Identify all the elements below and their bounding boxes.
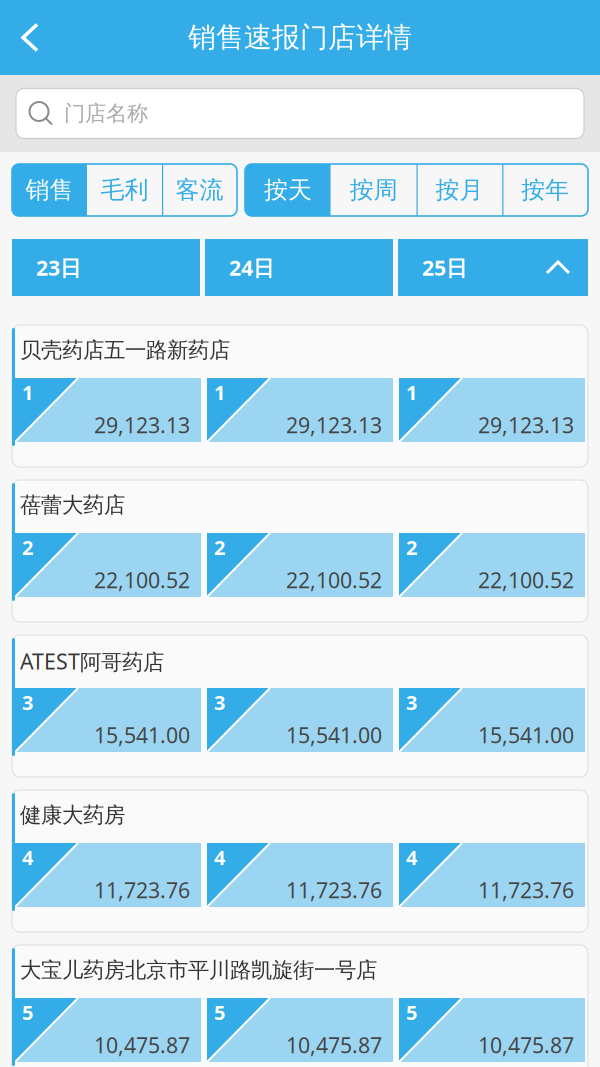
staticText: 1 <box>214 379 225 406</box>
button[interactable]: 按周 <box>331 164 417 216</box>
staticText: 5 <box>406 999 417 1026</box>
staticText: 按周 <box>350 175 398 205</box>
button[interactable]: 门店名称 <box>16 88 584 138</box>
staticText: 1 <box>22 379 33 406</box>
staticText: 4 <box>214 844 225 871</box>
staticText: 15,541.00 <box>478 721 574 749</box>
button[interactable]: 健康大药房 <box>12 790 588 932</box>
staticText: 22,100.52 <box>94 566 190 594</box>
staticText: 11,723.76 <box>478 876 574 904</box>
staticText: 贝壳药店五一路新药店 <box>20 337 230 363</box>
button[interactable]: 23日 <box>12 239 200 296</box>
staticText: 销售 <box>25 175 73 205</box>
staticText: 5 <box>22 999 33 1026</box>
button[interactable]: 贝壳药店五一路新药店 <box>12 325 588 467</box>
staticText: 29,123.13 <box>478 411 574 439</box>
staticText: 11,723.76 <box>286 876 382 904</box>
staticText: 4 <box>22 844 33 871</box>
staticText: 29,123.13 <box>94 411 190 439</box>
staticText: 23日 <box>36 253 81 282</box>
button[interactable]: 销售 <box>12 164 87 216</box>
staticText: 健康大药房 <box>20 802 125 828</box>
staticText: 29,123.13 <box>286 411 382 439</box>
staticText: 10,475.87 <box>478 1031 574 1059</box>
staticText: 按月 <box>435 175 483 205</box>
staticText: 3 <box>214 689 225 716</box>
button[interactable]: 按月 <box>416 164 502 216</box>
button[interactable]: 按天 <box>245 164 331 216</box>
staticText: 按天 <box>264 175 312 205</box>
staticText: 毛利 <box>100 175 148 205</box>
staticText: 大宝儿药房北京市平川路凯旋街一号店 <box>20 957 377 983</box>
button[interactable]: 客流 <box>162 164 237 216</box>
button[interactable]: 24日 <box>205 239 393 296</box>
staticText: 10,475.87 <box>94 1031 190 1059</box>
staticText: 3 <box>406 689 417 716</box>
staticText: 2 <box>22 534 33 561</box>
staticText: 按年 <box>521 175 569 205</box>
staticText: 2 <box>214 534 225 561</box>
staticText: 4 <box>406 844 417 871</box>
staticText: 销售速报门店详情 <box>188 20 412 55</box>
staticText: 3 <box>22 689 33 716</box>
staticText: 15,541.00 <box>286 721 382 749</box>
button[interactable]: 蓓蕾大药店 <box>12 480 588 622</box>
staticText: 25日 <box>422 253 467 282</box>
button[interactable]: 大宝儿药房北京市平川路凯旋街一号店 <box>12 945 588 1067</box>
staticText: 10,475.87 <box>286 1031 382 1059</box>
staticText: 门店名称 <box>64 100 148 127</box>
staticText: 蓓蕾大药店 <box>20 492 125 518</box>
staticText: 2 <box>406 534 417 561</box>
button[interactable]: 毛利 <box>87 164 162 216</box>
button[interactable]: ATEST阿哥药店 <box>12 635 588 777</box>
staticText: 24日 <box>229 253 274 282</box>
staticText: 5 <box>214 999 225 1026</box>
staticText: 22,100.52 <box>478 566 574 594</box>
staticText: 1 <box>406 379 417 406</box>
staticText: 客流 <box>175 175 223 205</box>
button[interactable]: Back <box>0 0 54 75</box>
staticText: 11,723.76 <box>94 876 190 904</box>
button[interactable]: 25日 <box>398 239 588 296</box>
button[interactable]: 按年 <box>502 164 588 216</box>
staticText: ATEST阿哥药店 <box>20 647 164 675</box>
staticText: 15,541.00 <box>94 721 190 749</box>
staticText: 22,100.52 <box>286 566 382 594</box>
